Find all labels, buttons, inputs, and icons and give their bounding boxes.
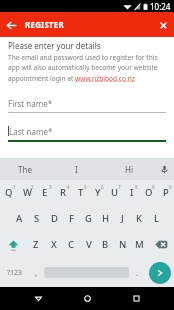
staticText: V [86,238,92,251]
button[interactable]: F [63,205,80,231]
button[interactable]: D [46,205,63,231]
staticText: Hi [125,164,133,175]
staticText: D [51,212,58,225]
staticText: . [136,267,139,278]
staticText: The email and password used to register … [8,53,168,83]
staticText: K [136,212,143,225]
staticText: M [135,238,144,251]
button[interactable]: Backspace [148,231,174,258]
staticText: E [42,186,48,199]
staticText: Y [95,186,101,199]
staticText: 9 [152,184,155,190]
button[interactable]: K [131,205,148,231]
staticText: O [145,186,153,199]
button[interactable]: T [72,180,89,205]
staticText: 4 [67,184,70,190]
staticText: U [111,186,119,199]
button[interactable]: U [106,180,123,205]
staticText: X [51,238,57,251]
staticText: First name* [8,98,53,109]
button[interactable]: Y [89,180,106,205]
button[interactable]: I [51,158,102,180]
staticText: N [119,238,127,251]
button[interactable]: , [29,258,44,287]
staticText: Q [5,186,13,199]
button[interactable]: Enter [145,258,174,287]
button[interactable]: S [28,205,46,231]
button[interactable] [44,258,129,287]
button[interactable]: Recents [125,287,147,309]
staticText: Please enter your details [8,40,101,51]
button[interactable]: R [54,180,72,205]
staticText: S [34,212,40,225]
staticText: 0 [169,184,172,190]
staticText: The [18,164,32,175]
button[interactable]: X [45,231,63,258]
staticText: R [60,186,67,199]
staticText: J [121,212,124,225]
staticText: 3 [49,184,52,190]
button[interactable]: . [129,258,145,287]
staticText: 10:24 [150,1,171,12]
button[interactable]: Voice input [154,158,174,180]
staticText: Z [33,238,39,251]
button[interactable]: G [80,205,97,231]
button[interactable]: B [97,231,114,258]
button[interactable]: L [148,205,165,231]
button[interactable]: Back [27,287,49,309]
button[interactable]: V [80,231,97,258]
staticText: , [35,267,38,278]
button[interactable]: W [18,180,36,205]
staticText: 5 [84,184,87,190]
button[interactable]: Close [152,14,174,36]
button[interactable]: E [36,180,54,205]
button[interactable]: M [131,231,148,258]
staticText: 1 [13,184,16,190]
staticText: A [16,212,23,225]
button[interactable]: J [114,205,131,231]
button[interactable]: Back [0,14,22,36]
staticText: 6 [101,184,104,190]
button[interactable]: H [97,205,114,231]
staticText: B [102,238,109,251]
staticText: 7 [118,184,121,190]
staticText: ?123 [7,268,23,278]
button[interactable]: C [63,231,80,258]
staticText: I [130,186,134,199]
button[interactable]: I [123,180,140,205]
staticText: F [69,212,75,225]
staticText: I [75,164,78,175]
staticText: P [163,186,169,199]
button[interactable]: P [157,180,174,205]
staticText: Last name* [9,126,53,137]
staticText: 8 [135,184,138,190]
staticText: C [68,238,75,251]
button[interactable]: Shift [0,231,27,258]
button[interactable]: A [10,205,28,231]
staticText: L [154,212,160,225]
staticText: REGISTER [25,19,64,30]
button[interactable]: The [0,158,50,180]
staticText: H [102,212,110,225]
button[interactable]: N [114,231,131,258]
staticText: T [78,186,84,199]
staticText: 2 [31,184,34,190]
button[interactable]: ?123 [0,258,29,287]
staticText: G [85,212,92,225]
staticText: W [23,186,32,199]
button[interactable]: Hi [103,158,154,180]
button[interactable]: Z [27,231,45,258]
button[interactable]: Home [76,287,98,309]
button[interactable]: Q [0,180,18,205]
button[interactable]: O [140,180,157,205]
